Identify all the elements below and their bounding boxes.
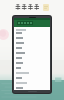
button[interactable]: App icon [15, 3, 49, 11]
button[interactable]: Search [14, 18, 50, 27]
other: App icon [43, 4, 49, 11]
button[interactable]: Search [17, 21, 33, 25]
button[interactable]: Search [12, 15, 52, 94]
